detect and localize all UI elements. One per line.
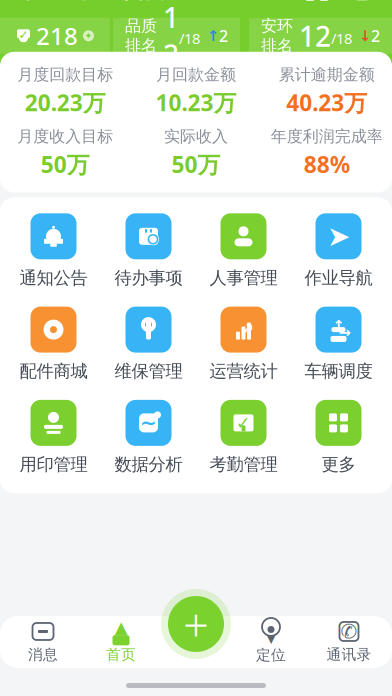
button[interactable]: Profile <box>350 0 374 1</box>
button[interactable]: 通知公告 <box>6 213 101 289</box>
staticText: 用印管理 <box>19 454 87 475</box>
staticText: 数据分析 <box>114 454 182 475</box>
staticText: ∼ <box>140 411 157 434</box>
staticText: ✓ <box>236 413 251 433</box>
staticText: 40.23万 <box>286 87 367 118</box>
staticText: 12 <box>163 0 179 73</box>
staticText: + <box>183 594 209 654</box>
staticText: 50万 <box>171 149 220 179</box>
staticText: 月度回款目标 <box>17 65 113 84</box>
staticText: ↓ <box>359 27 371 44</box>
staticText: ✆ <box>340 620 357 643</box>
button[interactable]: 掌上环卫项目 <box>18 0 186 10</box>
staticText: /18 <box>331 29 352 48</box>
staticText: 月度收入目标 <box>17 127 113 146</box>
staticText: ➤ <box>327 220 350 252</box>
button[interactable]: 品质排名 <box>113 18 240 54</box>
staticText: 2 <box>219 25 228 46</box>
staticText: 定位 <box>256 646 286 664</box>
staticText: 待办事项 <box>114 267 182 289</box>
button[interactable]: ✓ <box>196 400 291 475</box>
staticText: 人事管理 <box>209 267 277 289</box>
staticText: ✦ <box>84 30 92 41</box>
staticText: 218 <box>36 20 78 52</box>
staticText: 配件商城 <box>19 361 87 382</box>
staticText: 品质排名 <box>125 16 157 55</box>
button[interactable]: 人事管理 <box>196 213 291 289</box>
staticText: 20.23万 <box>25 87 106 118</box>
staticText: ↑ <box>207 27 219 44</box>
staticText: 维保管理 <box>114 361 182 382</box>
staticText: 考勤管理 <box>209 454 277 475</box>
staticText: 运营统计 <box>209 361 277 382</box>
staticText: 通知公告 <box>19 267 87 289</box>
button[interactable]: ▼ <box>232 615 310 669</box>
button[interactable]: 用印管理 <box>6 400 101 475</box>
staticText: ✓ <box>18 28 28 42</box>
staticText: 2 <box>371 25 380 46</box>
staticText: ▼ <box>267 633 275 645</box>
staticText: ↑ <box>332 317 344 334</box>
button[interactable]: ▲ <box>82 615 160 668</box>
staticText: ↗ <box>239 320 254 339</box>
staticText: 掌上环卫项目 <box>18 0 168 4</box>
staticText: 月回款金额 <box>156 65 236 84</box>
button[interactable]: ↑ <box>291 307 386 382</box>
staticText: 实际收入 <box>164 127 228 146</box>
button[interactable]: 安环排名 <box>249 18 392 54</box>
button[interactable]: 消息 <box>4 615 82 668</box>
staticText: 88% <box>304 149 350 179</box>
button[interactable]: ∼ <box>101 400 196 475</box>
staticText: 作业导航 <box>304 267 372 289</box>
staticText: 年度利润完成率 <box>271 127 383 146</box>
button[interactable]: Scan QR code <box>304 0 330 2</box>
button[interactable]: 更多 <box>291 400 386 475</box>
staticText: 安环排名 <box>261 16 293 55</box>
button[interactable]: ➤ <box>291 213 386 289</box>
staticText: → <box>338 324 350 341</box>
button[interactable]: 待办事项 <box>101 213 196 289</box>
staticText: 消息 <box>28 645 58 663</box>
staticText: ▲ <box>114 618 127 637</box>
staticText: 50万 <box>41 149 90 179</box>
staticText: 车辆调度 <box>304 361 372 382</box>
button[interactable]: 配件商城 <box>6 307 101 382</box>
staticText: 累计逾期金额 <box>279 65 375 84</box>
staticText: /18 <box>179 29 200 48</box>
staticText: 首页 <box>106 645 136 663</box>
staticText: 通讯录 <box>326 645 371 663</box>
button[interactable]: Add <box>160 588 232 660</box>
button[interactable]: 维保管理 <box>101 307 196 382</box>
staticText: 10.23万 <box>155 87 236 118</box>
button[interactable]: 🛡 <box>0 18 110 54</box>
staticText: 12 <box>299 17 331 54</box>
button[interactable]: ↗ <box>196 307 291 382</box>
staticText: 更多 <box>321 454 355 475</box>
button[interactable]: 📞 <box>310 615 388 668</box>
